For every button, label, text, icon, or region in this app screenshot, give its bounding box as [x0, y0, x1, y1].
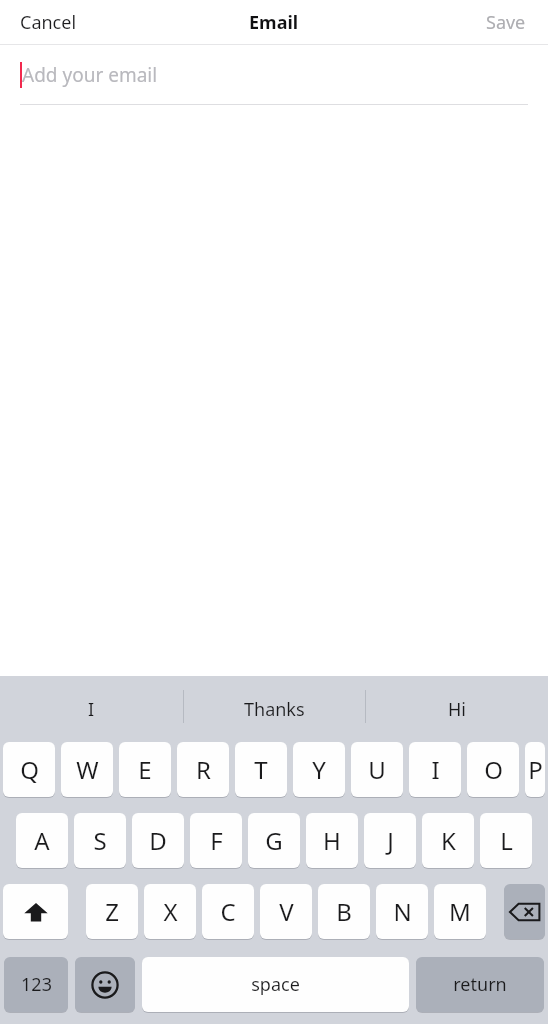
- staticText: Email: [249, 10, 299, 35]
- staticText: N: [393, 895, 412, 928]
- button[interactable]: 123: [4, 957, 68, 1014]
- staticText: L: [500, 824, 513, 857]
- staticText: G: [265, 824, 283, 857]
- button[interactable]: M: [434, 884, 486, 941]
- staticText: C: [220, 895, 236, 928]
- button[interactable]: Z: [86, 884, 138, 941]
- staticText: space: [251, 972, 300, 997]
- staticText: B: [336, 895, 352, 928]
- button[interactable]: W: [61, 742, 113, 799]
- staticText: Z: [105, 895, 119, 928]
- button[interactable]: return: [416, 957, 544, 1014]
- staticText: I: [431, 753, 440, 786]
- button[interactable]: G: [248, 813, 300, 870]
- staticText: P: [528, 753, 543, 786]
- button[interactable]: K: [422, 813, 474, 870]
- staticText: 123: [21, 972, 52, 997]
- button[interactable]: Backspace: [504, 884, 545, 941]
- button[interactable]: Add your email: [20, 62, 158, 88]
- staticText: Hi: [448, 697, 466, 722]
- button[interactable]: E: [119, 742, 171, 799]
- staticText: T: [254, 753, 268, 786]
- staticText: S: [93, 824, 107, 857]
- button[interactable]: I: [409, 742, 461, 799]
- button[interactable]: S: [74, 813, 126, 870]
- button[interactable]: A: [16, 813, 68, 870]
- staticText: E: [138, 753, 152, 786]
- button[interactable]: Save: [484, 4, 528, 41]
- button[interactable]: I: [0, 676, 183, 742]
- staticText: Thanks: [244, 697, 305, 722]
- staticText: W: [76, 753, 99, 786]
- button[interactable]: O: [467, 742, 519, 799]
- staticText: J: [387, 824, 394, 857]
- button[interactable]: P: [525, 742, 545, 799]
- button[interactable]: U: [351, 742, 403, 799]
- button[interactable]: B: [318, 884, 370, 941]
- button[interactable]: T: [235, 742, 287, 799]
- staticText: V: [279, 895, 294, 928]
- staticText: X: [163, 895, 178, 928]
- staticText: A: [34, 824, 50, 857]
- button[interactable]: X: [144, 884, 196, 941]
- staticText: M: [449, 895, 471, 928]
- staticText: D: [149, 824, 167, 857]
- staticText: K: [441, 824, 456, 857]
- staticText: H: [323, 824, 341, 857]
- button[interactable]: Shift: [3, 884, 68, 941]
- staticText: I: [88, 697, 95, 722]
- button[interactable]: space: [142, 957, 409, 1014]
- staticText: return: [453, 972, 507, 997]
- button[interactable]: D: [132, 813, 184, 870]
- staticText: Q: [20, 753, 39, 786]
- button[interactable]: J: [364, 813, 416, 870]
- button[interactable]: Cancel: [18, 4, 79, 41]
- button[interactable]: Thanks: [183, 676, 365, 742]
- staticText: Add your email: [22, 62, 158, 88]
- button[interactable]: Q: [3, 742, 55, 799]
- staticText: Cancel: [20, 10, 77, 35]
- staticText: R: [196, 753, 211, 786]
- staticText: Y: [312, 753, 326, 786]
- staticText: U: [368, 753, 386, 786]
- button[interactable]: R: [177, 742, 229, 799]
- staticText: O: [484, 753, 503, 786]
- staticText: Save: [486, 10, 526, 35]
- button[interactable]: F: [190, 813, 242, 870]
- button[interactable]: Hi: [365, 676, 548, 742]
- button[interactable]: Emoji keyboard: [75, 957, 135, 1014]
- button[interactable]: H: [306, 813, 358, 870]
- button[interactable]: C: [202, 884, 254, 941]
- staticText: F: [210, 824, 223, 857]
- button[interactable]: V: [260, 884, 312, 941]
- button[interactable]: Y: [293, 742, 345, 799]
- button[interactable]: L: [480, 813, 532, 870]
- button[interactable]: N: [376, 884, 428, 941]
